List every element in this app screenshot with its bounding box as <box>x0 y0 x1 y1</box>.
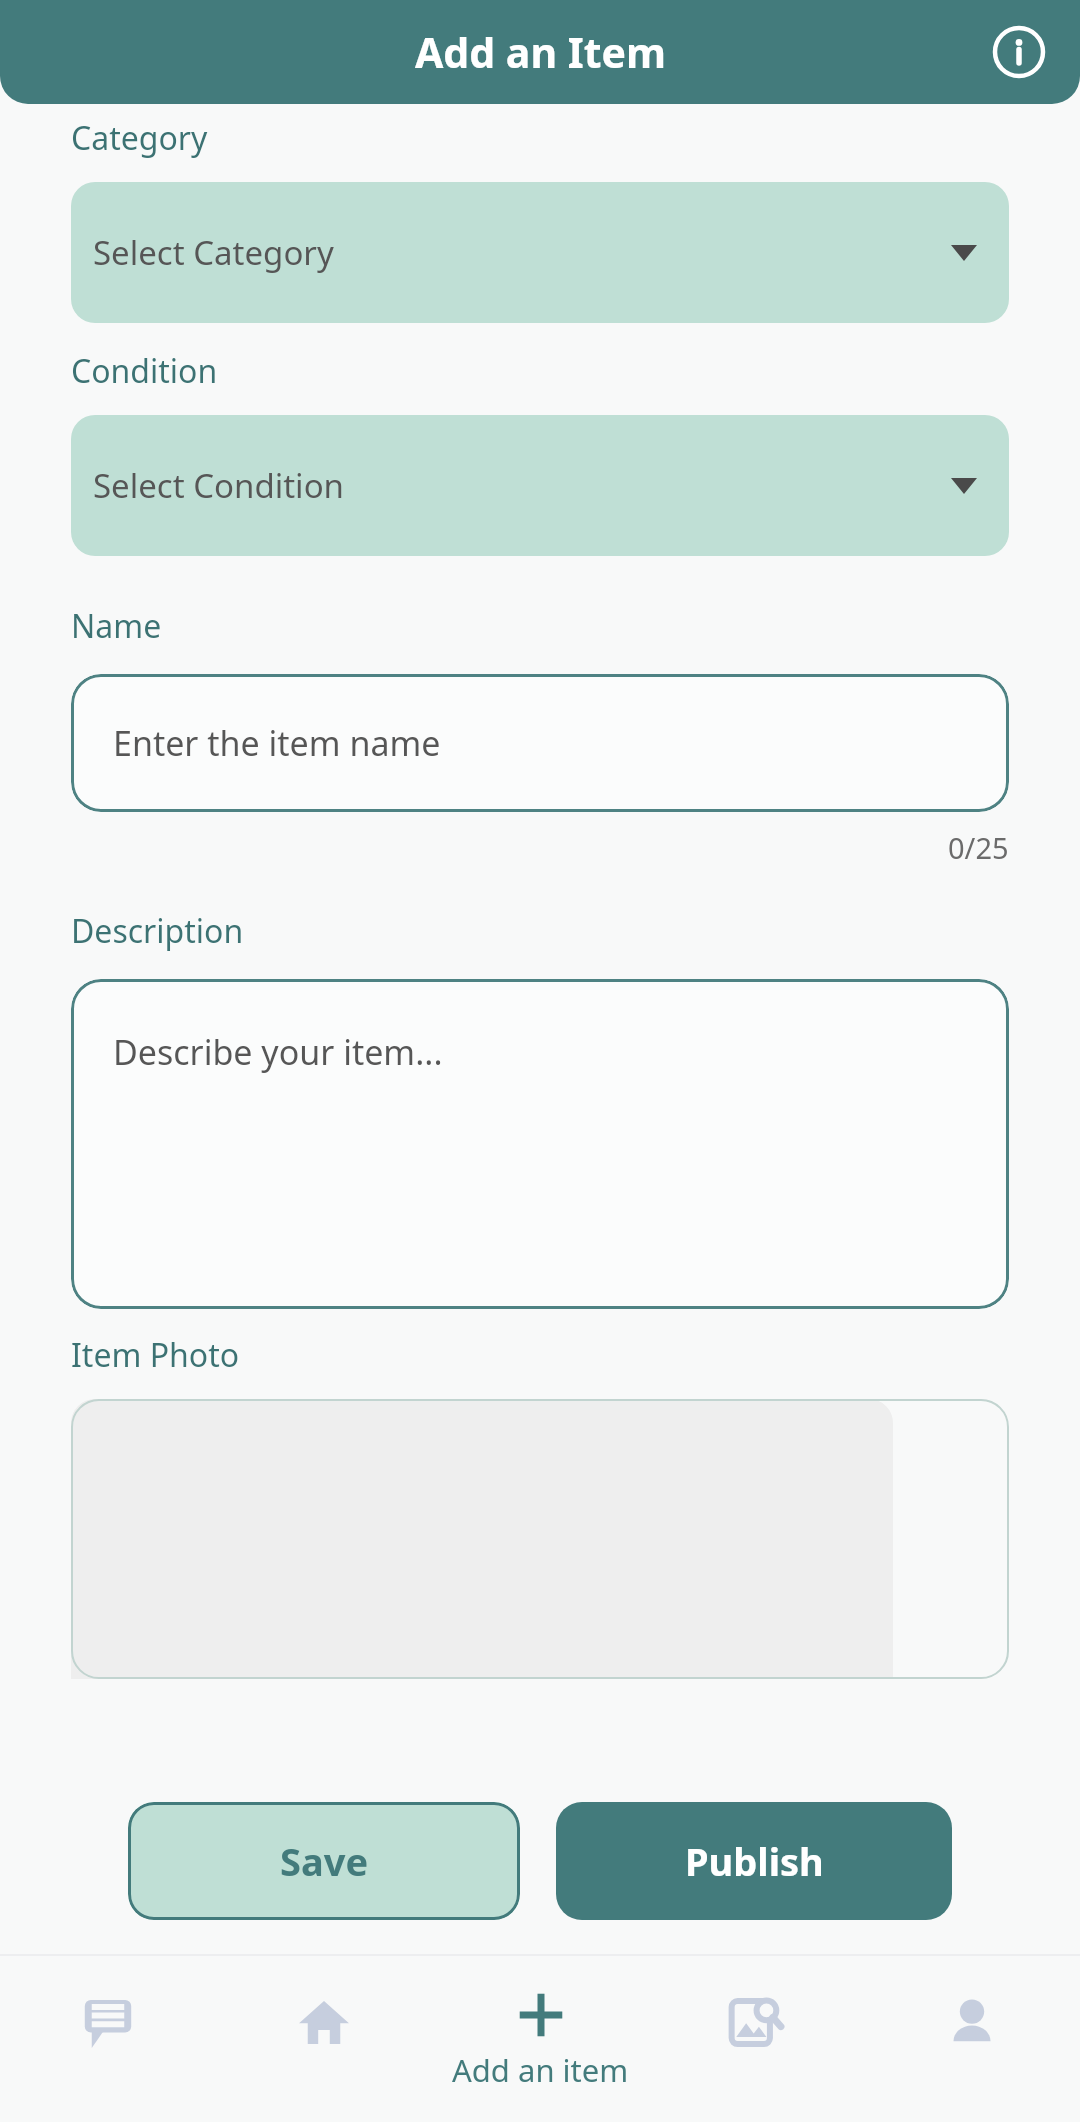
button[interactable]: Messages <box>0 1956 216 2122</box>
button[interactable]: Add an item <box>432 1956 648 2122</box>
staticText: Category <box>71 116 208 160</box>
staticText: Description <box>71 909 244 953</box>
staticText: Item Photo <box>71 1333 240 1377</box>
staticText: Add an Item <box>415 24 666 80</box>
button[interactable]: Home <box>216 1956 432 2122</box>
button[interactable]: Add item photo <box>71 1399 1009 1679</box>
staticText: Name <box>71 604 162 648</box>
staticText: Add an item <box>452 2049 629 2091</box>
staticText: Condition <box>71 349 218 393</box>
staticText: 0/25 <box>948 828 1009 867</box>
staticText: Enter the item name <box>113 720 441 766</box>
button[interactable]: Describe your item... <box>71 979 1009 1309</box>
staticText: Select Condition <box>93 463 344 508</box>
staticText: Select Category <box>93 230 334 275</box>
button[interactable]: Profile <box>864 1956 1080 2122</box>
staticText: Publish <box>685 1835 824 1887</box>
button[interactable]: Enter the item name <box>71 674 1009 812</box>
button[interactable]: Select Category <box>71 182 1009 323</box>
button[interactable]: Save <box>128 1802 520 1920</box>
staticText: Describe your item... <box>113 1029 443 1075</box>
button[interactable]: Select Condition <box>71 415 1009 556</box>
button[interactable]: Publish <box>556 1802 952 1920</box>
staticText: Save <box>280 1835 369 1887</box>
button[interactable]: Information <box>992 25 1046 79</box>
button[interactable]: Search items <box>648 1956 864 2122</box>
